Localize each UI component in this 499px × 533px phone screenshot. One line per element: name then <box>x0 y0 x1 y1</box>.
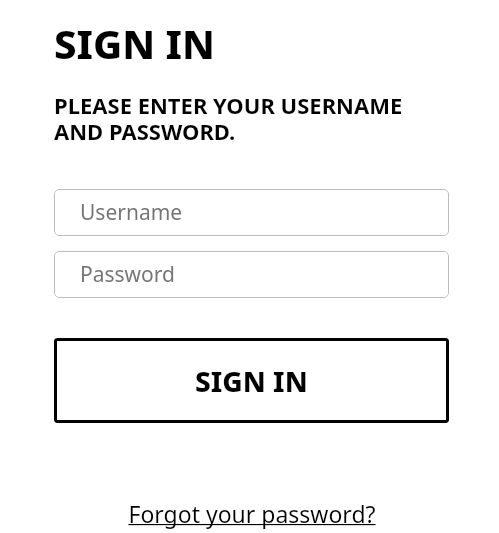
staticText: SIGN IN <box>54 16 216 70</box>
staticText: Password <box>80 260 175 289</box>
button[interactable]: Password <box>54 251 449 298</box>
button[interactable]: SIGN IN <box>54 338 449 423</box>
staticText: Username <box>80 198 183 227</box>
staticText: Forgot your password? <box>128 498 376 529</box>
button[interactable]: Forgot your password? <box>122 495 382 532</box>
staticText: PLEASE ENTER YOUR USERNAME AND PASSWORD. <box>54 90 403 147</box>
button[interactable]: Username <box>54 189 449 236</box>
staticText: SIGN IN <box>195 362 308 400</box>
